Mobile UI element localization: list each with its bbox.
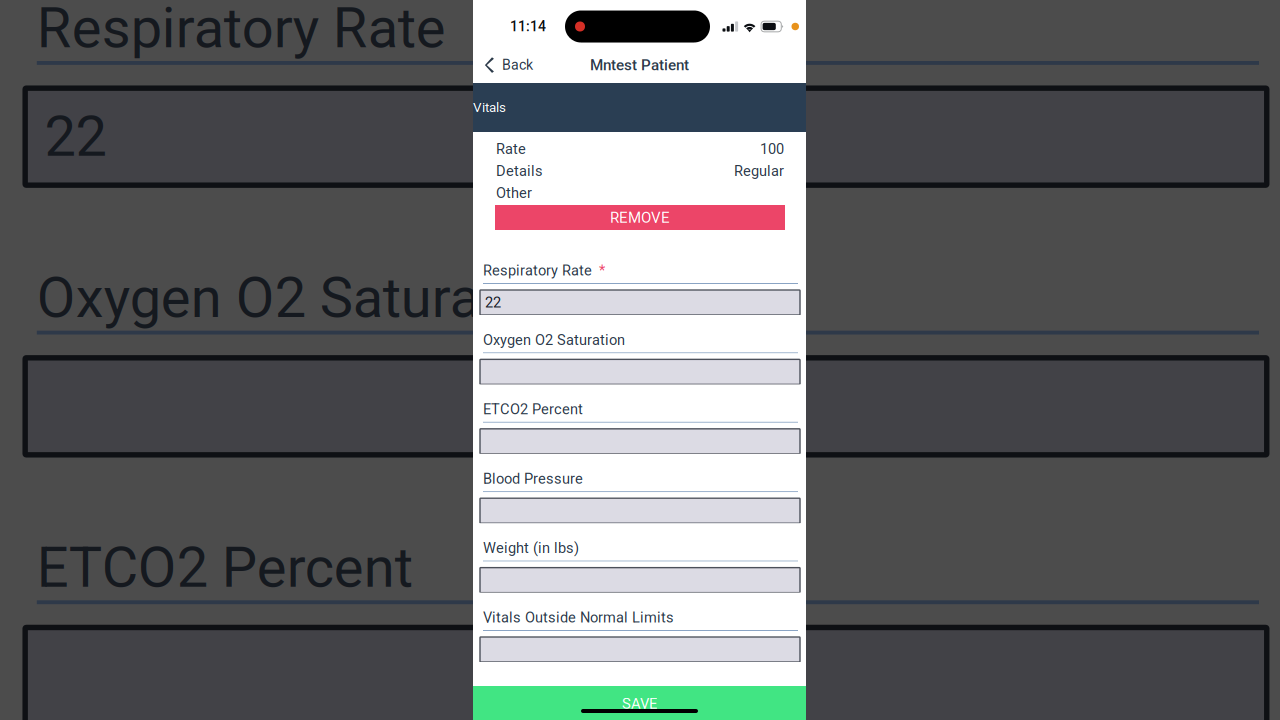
staticText: Mntest Patient [590, 56, 689, 74]
staticText: 100 [760, 140, 784, 157]
staticText: 22 [45, 104, 107, 169]
staticText: REMOVE [610, 209, 670, 226]
staticText: Blood Pressure [483, 470, 583, 487]
button[interactable]: REMOVE [495, 205, 785, 230]
staticText: 22 [485, 294, 501, 311]
staticText: * [473, 0, 497, 61]
staticText: 11:14 [510, 18, 546, 35]
staticText: Rate [496, 140, 526, 157]
staticText: Oxygen O2 Saturation [37, 265, 575, 331]
button[interactable]: SAVE [473, 686, 806, 720]
staticText: Other [496, 184, 532, 201]
staticText: Respiratory Rate [37, 0, 446, 61]
staticText: Back [502, 57, 533, 73]
staticText: Regular [734, 162, 784, 179]
staticText: Oxygen O2 Saturation [483, 331, 625, 348]
button[interactable]: Back [473, 49, 543, 80]
staticText: Details [496, 162, 543, 179]
staticText: ETCO2 Percent [37, 535, 413, 600]
staticText: Vitals Outside Normal Limits [483, 609, 674, 626]
staticText: ETCO2 Percent [483, 401, 583, 418]
staticText: SAVE [622, 695, 657, 712]
staticText: * [599, 262, 605, 279]
staticText: Vitals [473, 100, 506, 115]
staticText: Weight (in lbs) [483, 539, 579, 557]
staticText: Respiratory Rate [483, 262, 592, 279]
